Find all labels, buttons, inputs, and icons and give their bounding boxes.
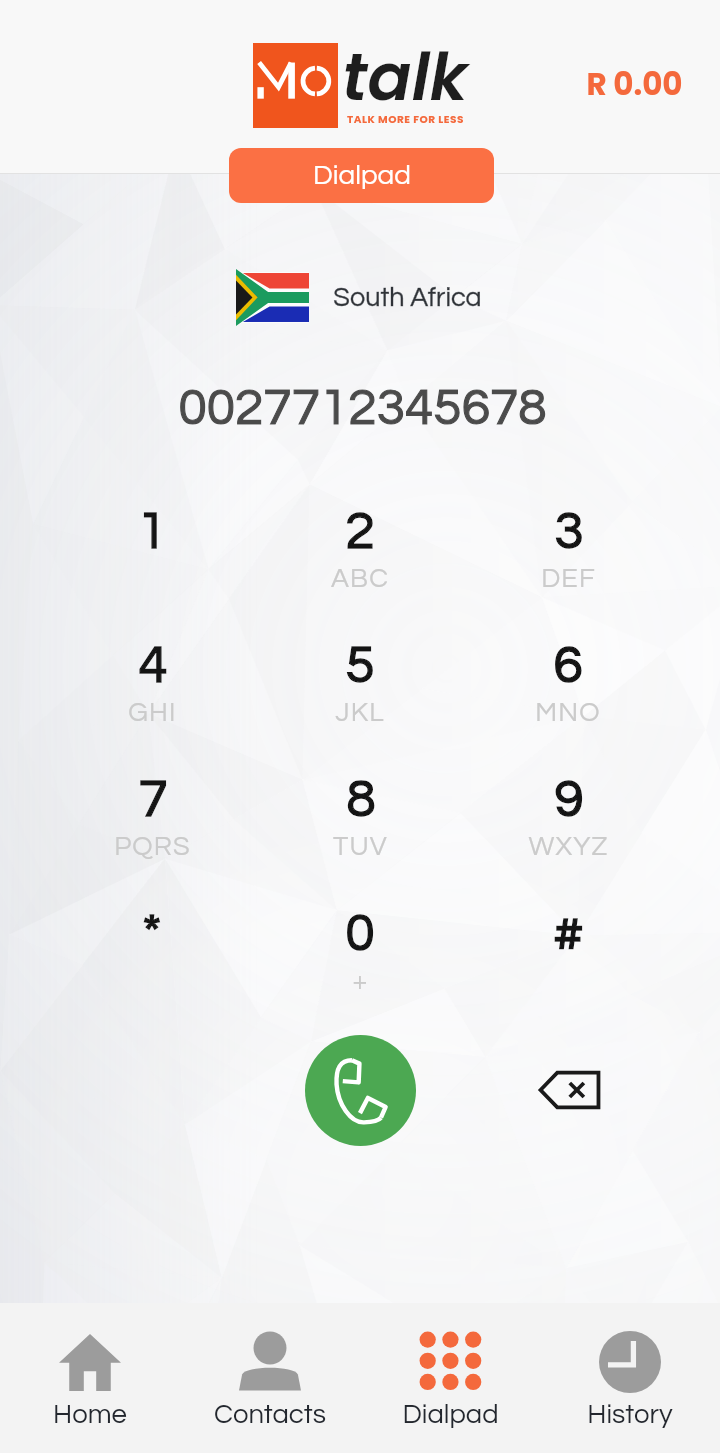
button[interactable]: Contacts: [180, 1303, 360, 1453]
staticText: 9: [554, 773, 584, 828]
staticText: 7: [138, 773, 168, 828]
staticText: GHI: [128, 699, 177, 727]
button[interactable]: South Africa: [220, 262, 500, 332]
button[interactable]: 4: [48, 619, 256, 753]
staticText: 4: [138, 639, 168, 694]
staticText: 5: [345, 639, 375, 694]
staticText: talk: [342, 32, 468, 123]
button[interactable]: 1: [48, 485, 256, 619]
staticText: 2: [345, 505, 375, 560]
staticText: PQRS: [114, 833, 191, 861]
staticText: Home: [53, 1400, 127, 1428]
staticText: JKL: [335, 699, 385, 727]
staticText: MNO: [535, 699, 601, 727]
staticText: 0: [345, 907, 375, 962]
staticText: TUV: [333, 833, 388, 861]
staticText: 0027712345678: [178, 382, 547, 435]
staticText: 1: [137, 505, 167, 560]
staticText: 6: [553, 639, 583, 694]
staticText: South Africa: [333, 284, 482, 312]
button[interactable]: Call: [295, 1025, 425, 1155]
staticText: 8: [346, 773, 376, 828]
staticText: 4: [138, 639, 168, 694]
staticText: 0: [345, 907, 375, 962]
button[interactable]: 9: [464, 753, 672, 887]
staticText: Dialpad: [313, 161, 411, 190]
staticText: WXYZ: [528, 833, 609, 861]
button[interactable]: Home: [0, 1303, 180, 1453]
staticText: Dialpad: [402, 1400, 499, 1428]
button[interactable]: 6: [464, 619, 672, 753]
staticText: 9: [554, 773, 584, 828]
button[interactable]: 5: [256, 619, 464, 753]
staticText: 1: [137, 505, 167, 560]
staticText: 2: [345, 505, 375, 560]
staticText: 5: [345, 639, 375, 694]
button[interactable]: 7: [48, 753, 256, 887]
staticText: +: [352, 967, 369, 995]
staticText: *: [142, 907, 162, 962]
staticText: ABC: [331, 565, 389, 593]
button[interactable]: 8: [256, 753, 464, 887]
button[interactable]: 2: [256, 485, 464, 619]
button[interactable]: Dialpad: [229, 148, 494, 203]
staticText: R 0.00: [586, 62, 683, 105]
staticText: History: [587, 1400, 673, 1428]
staticText: 6: [553, 639, 583, 694]
button[interactable]: *: [48, 887, 256, 1021]
staticText: #: [553, 907, 584, 962]
staticText: Contacts: [214, 1400, 326, 1428]
staticText: #: [553, 907, 584, 962]
button[interactable]: 0: [256, 887, 464, 1021]
staticText: *: [142, 907, 162, 962]
staticText: TALK MORE FOR LESS: [347, 112, 464, 127]
staticText: 7: [138, 773, 168, 828]
button[interactable]: 3: [464, 485, 672, 619]
button[interactable]: Dialpad: [360, 1303, 540, 1453]
staticText: DEF: [541, 565, 596, 593]
staticText: 3: [554, 505, 584, 560]
staticText: South Africa: [333, 284, 482, 312]
staticText: 8: [346, 773, 376, 828]
button[interactable]: Backspace: [509, 1040, 629, 1140]
button[interactable]: #: [464, 887, 672, 1021]
staticText: 3: [554, 505, 584, 560]
button[interactable]: History: [540, 1303, 720, 1453]
staticText: 0027712345678: [178, 382, 547, 435]
